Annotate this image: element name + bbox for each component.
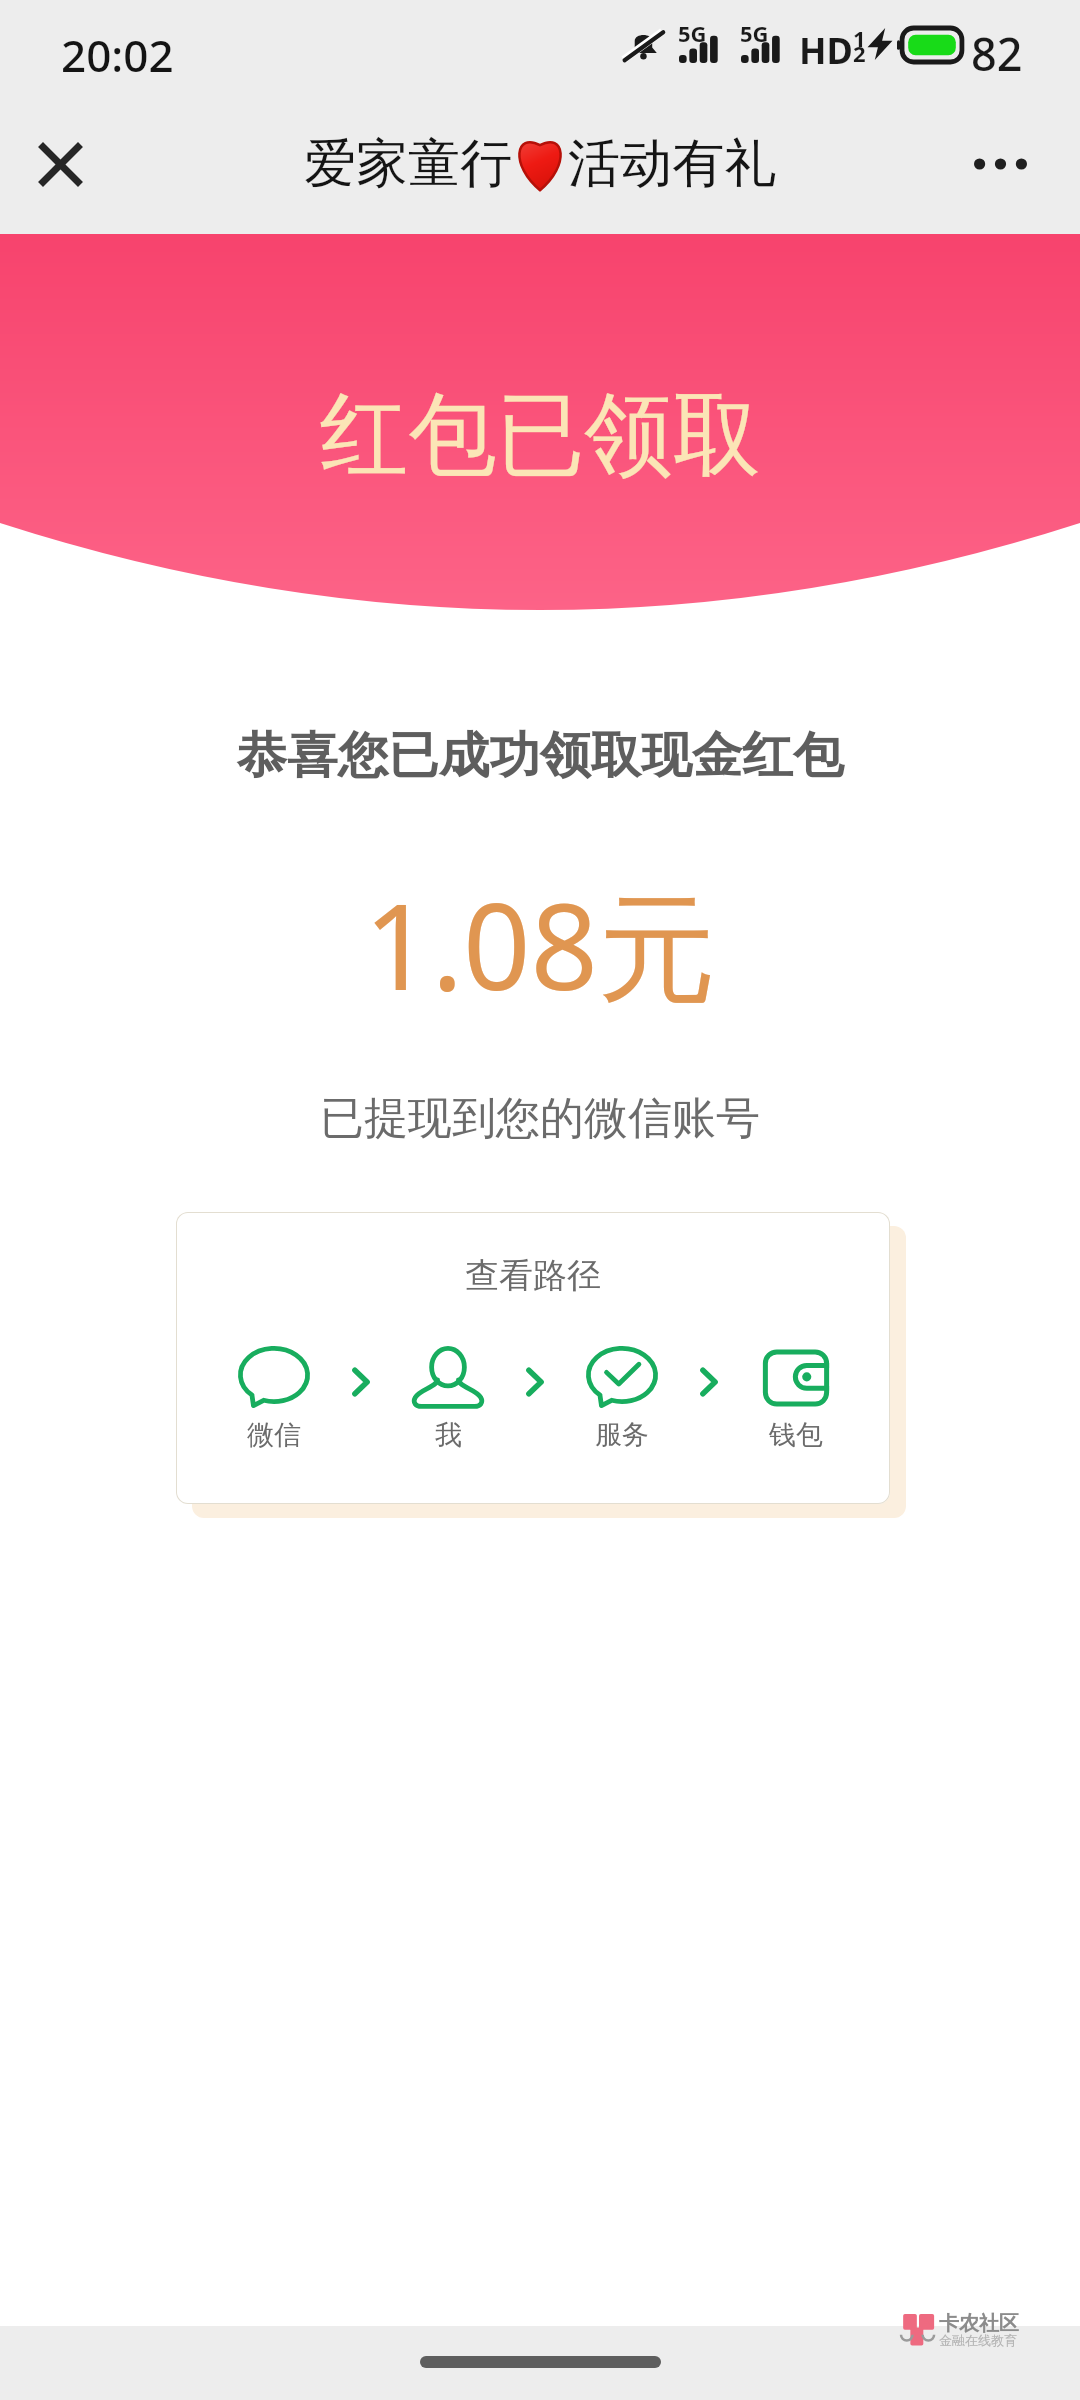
staticText: 1.08元 — [364, 864, 717, 1025]
staticText: 金融在线教育 — [939, 2332, 1017, 2348]
button[interactable]: 更多 — [958, 122, 1042, 206]
staticText: 20:02 — [61, 25, 174, 85]
staticText: HD — [799, 26, 853, 66]
staticText: 活动有礼 — [568, 131, 776, 197]
staticText: 2 — [853, 38, 866, 68]
button[interactable]: 查看路径 — [176, 1212, 890, 1504]
staticText: 卡农社区 — [939, 2311, 1019, 2336]
staticText: 微信 — [247, 1418, 301, 1452]
staticText: 服务 — [595, 1418, 649, 1452]
staticText: 已提现到您的微信账号 — [320, 1091, 760, 1146]
staticText: 82 — [971, 23, 1023, 84]
staticText: 钱包 — [769, 1418, 823, 1452]
staticText: 1 — [853, 23, 866, 53]
staticText: 5G — [740, 18, 769, 48]
staticText: 我 — [435, 1418, 462, 1452]
staticText: 查看路径 — [465, 1254, 601, 1297]
staticText: 红包已领取 — [320, 378, 761, 493]
staticText: 恭喜您已成功领取现金红包 — [236, 725, 843, 787]
staticText: 爱家童行 — [304, 131, 512, 197]
button[interactable]: 关闭 — [20, 124, 100, 204]
staticText: 5G — [678, 18, 707, 48]
